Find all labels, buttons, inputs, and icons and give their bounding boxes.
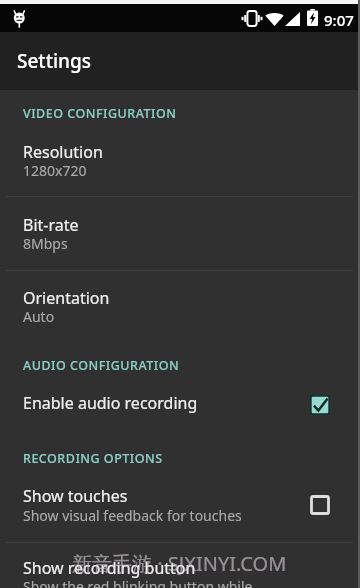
staticText: Orientation [23, 287, 110, 309]
other: Screen recorder notification [12, 8, 26, 28]
staticText: 9:07 [324, 10, 354, 30]
button[interactable]: Settings [0, 32, 360, 90]
staticText: Resolution [23, 141, 103, 163]
staticText: Enable audio recording [23, 392, 198, 414]
staticText: VIDEO CONFIGURATION [23, 105, 177, 122]
staticText: Show visual feedback for touches [23, 506, 242, 525]
staticText: 新音手游 · SJXINYI.COM [72, 550, 287, 577]
staticText: Bit-rate [23, 214, 79, 236]
button[interactable]: Orientation [0, 270, 360, 342]
button[interactable]: Checked [303, 388, 337, 422]
button[interactable]: Show recording button [0, 542, 360, 588]
staticText: 1280x720 [23, 161, 87, 180]
staticText: RECORDING OPTIONS [23, 450, 163, 467]
staticText: 8Mbps [23, 234, 68, 253]
button[interactable]: Resolution [0, 132, 360, 182]
button[interactable]: Unchecked [303, 488, 337, 522]
button[interactable]: Enable audio recording [0, 385, 360, 427]
staticText: AUDIO CONFIGURATION [23, 357, 180, 374]
staticText: Show the red blinking button while [23, 577, 253, 588]
staticText: Show touches [23, 485, 128, 507]
staticText: Settings [17, 48, 91, 74]
button[interactable]: Show touches [0, 475, 360, 542]
staticText: Show recording button [23, 557, 196, 579]
staticText: Auto [23, 307, 55, 326]
button[interactable]: Bit-rate [0, 196, 360, 270]
